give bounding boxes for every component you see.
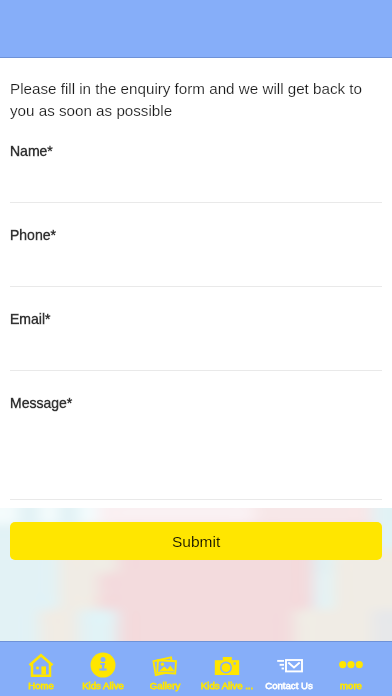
button[interactable]: Kids Alive Camera	[196, 642, 258, 696]
staticText: Phone*	[10, 227, 56, 243]
staticText: Home	[10, 680, 72, 691]
staticText: Email*	[10, 311, 51, 327]
staticText: Gallery	[134, 680, 196, 691]
staticText: Submit	[172, 533, 221, 550]
button[interactable]: Submit	[10, 522, 382, 560]
button[interactable]: more	[320, 642, 382, 696]
staticText: Name*	[10, 143, 53, 159]
button[interactable]: Home	[10, 642, 72, 696]
staticText: more	[320, 680, 382, 691]
button[interactable]: Kids Alive	[72, 642, 134, 696]
staticText: Please fill in the enquiry form and we w…	[10, 80, 382, 119]
button[interactable]: Contact Us	[258, 642, 320, 696]
staticText: Contact Us	[258, 680, 320, 691]
staticText: Message*	[10, 395, 73, 411]
staticText: Kids Alive	[72, 680, 134, 691]
button[interactable]: Gallery	[134, 642, 196, 696]
staticText: Kids Alive ...	[196, 680, 258, 691]
